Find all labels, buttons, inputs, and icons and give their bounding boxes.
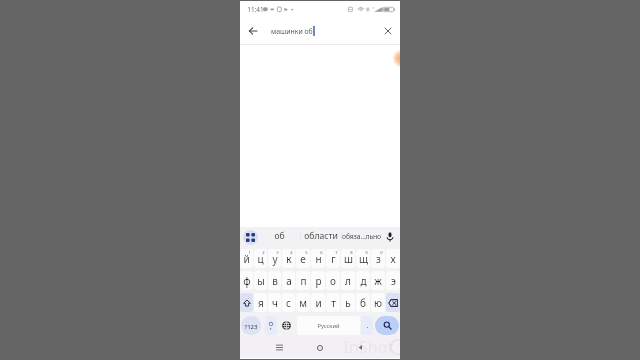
button[interactable]: области <box>301 227 340 247</box>
staticText: б <box>360 296 366 310</box>
staticText: я <box>258 296 264 310</box>
button[interactable]: л <box>341 271 355 290</box>
button[interactable]: й <box>240 249 253 268</box>
staticText: обяза…льно <box>342 232 381 241</box>
staticText: а <box>286 274 292 288</box>
staticText: т <box>331 296 336 310</box>
staticText: 9 <box>365 250 368 256</box>
button[interactable]: а <box>282 271 295 290</box>
button[interactable]: у <box>268 249 281 268</box>
button[interactable]: Русский <box>297 316 360 335</box>
button[interactable]: Voice input <box>382 229 398 245</box>
button[interactable]: ц <box>254 249 267 268</box>
button[interactable]: Clipboard <box>243 230 258 245</box>
button[interactable]: обяза…льно <box>340 227 382 247</box>
staticText: р <box>315 274 322 288</box>
staticText: Русский <box>317 322 340 330</box>
staticText: ь <box>345 296 351 310</box>
staticText: г <box>331 252 336 266</box>
button[interactable]: ж <box>371 271 385 290</box>
staticText: ф <box>243 274 251 288</box>
staticText: InShot <box>343 336 394 357</box>
staticText: 1 <box>248 250 251 256</box>
button[interactable]: Clear query <box>378 18 398 44</box>
staticText: 5 <box>305 250 308 256</box>
button[interactable]: з <box>371 249 385 268</box>
button[interactable]: д <box>356 271 370 290</box>
staticText: 8 <box>350 250 353 256</box>
button[interactable]: Change keyboard language <box>278 316 294 335</box>
staticText: ш <box>344 252 353 266</box>
staticText: о <box>330 274 336 288</box>
button[interactable]: ы <box>254 271 267 290</box>
button[interactable]: е <box>296 249 310 268</box>
staticText: ч <box>272 296 278 310</box>
staticText: м <box>299 296 307 310</box>
staticText: щ <box>359 252 368 266</box>
staticText: ы <box>257 274 265 288</box>
button[interactable]: о <box>326 271 340 290</box>
button[interactable]: и <box>311 293 325 312</box>
staticText: ц <box>257 252 264 266</box>
button[interactable]: Home <box>311 339 328 356</box>
button[interactable]: я <box>254 293 267 312</box>
button[interactable]: х <box>386 249 400 268</box>
button[interactable]: к <box>282 249 295 268</box>
staticText: 7 <box>335 250 338 256</box>
staticText: й <box>243 252 250 266</box>
button[interactable]: в <box>268 271 281 290</box>
staticText: к <box>286 252 292 266</box>
staticText: 2 <box>262 250 265 256</box>
button[interactable]: б <box>356 293 370 312</box>
staticText: 0 <box>380 250 383 256</box>
staticText: 4 <box>290 250 293 256</box>
staticText: 11:41 <box>247 5 264 14</box>
button[interactable]: р <box>311 271 325 290</box>
staticText: е <box>300 252 306 266</box>
staticText: х <box>390 252 396 266</box>
button[interactable]: ь <box>341 293 355 312</box>
staticText: 6 <box>320 250 323 256</box>
button[interactable]: Search <box>375 316 399 335</box>
staticText: з <box>376 252 381 266</box>
button[interactable]: с <box>282 293 295 312</box>
button[interactable]: ф <box>240 271 253 290</box>
button[interactable]: Recent apps <box>271 339 288 356</box>
button[interactable]: э <box>386 271 400 290</box>
staticText: с <box>286 296 291 310</box>
staticText: л <box>345 274 351 288</box>
button[interactable]: ч <box>268 293 281 312</box>
staticText: ?123 <box>244 322 258 330</box>
staticText: у <box>272 252 278 266</box>
staticText: области <box>304 230 338 242</box>
staticText: в <box>272 274 278 288</box>
button[interactable]: н <box>311 249 325 268</box>
button[interactable]: ?123 <box>241 316 261 335</box>
staticText: машинки об <box>271 27 313 36</box>
staticText: об <box>274 230 285 242</box>
button[interactable]: ш <box>341 249 355 268</box>
staticText: э <box>391 274 396 288</box>
button[interactable]: ю <box>371 293 385 312</box>
button[interactable]: г <box>326 249 340 268</box>
staticText: и <box>315 296 322 310</box>
staticText: ж <box>374 274 382 288</box>
staticText: 3 <box>276 250 279 256</box>
staticText: . <box>366 320 369 330</box>
staticText: н <box>315 252 322 266</box>
button[interactable]: м <box>296 293 310 312</box>
button[interactable]: об <box>260 227 298 247</box>
staticText: п <box>300 274 307 288</box>
button[interactable]: т <box>326 293 340 312</box>
button[interactable]: щ <box>356 249 370 268</box>
button[interactable]: Shift <box>240 293 253 312</box>
button[interactable]: Emoji and comma <box>265 316 277 335</box>
staticText: д <box>360 274 367 288</box>
button[interactable]: п <box>296 271 310 290</box>
button[interactable]: Back <box>352 339 369 356</box>
button[interactable]: Backspace <box>386 293 400 312</box>
button[interactable]: Back <box>243 18 263 44</box>
staticText: ю <box>374 296 382 310</box>
button[interactable]: . <box>361 316 373 335</box>
